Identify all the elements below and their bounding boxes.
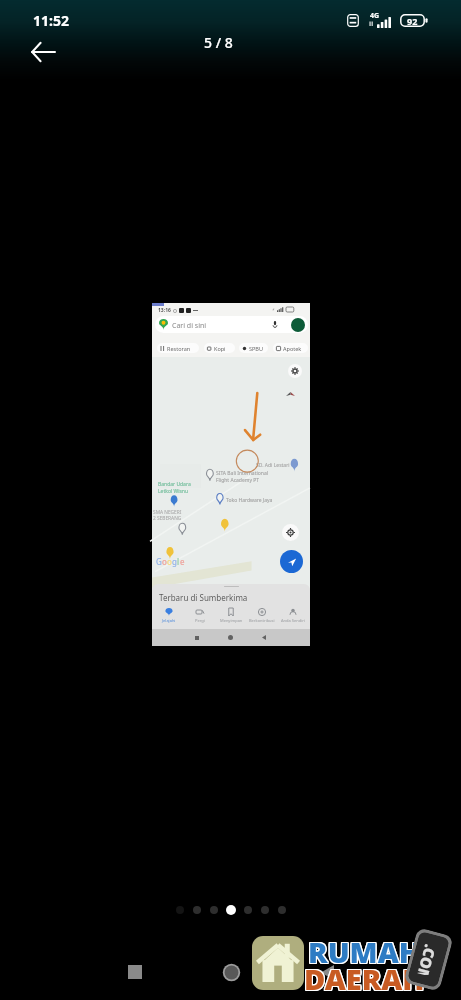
button[interactable]: Directions	[280, 550, 303, 573]
staticText: .COM	[416, 943, 441, 977]
staticText: Anda Sendiri	[281, 618, 305, 623]
staticText: g	[172, 556, 177, 567]
button[interactable]: Berkontribusi	[248, 608, 276, 623]
button[interactable]: Kopi	[204, 343, 235, 353]
button[interactable]: Map layers	[288, 364, 302, 378]
staticText: DAERAH	[304, 960, 425, 999]
staticText: RUMAH	[309, 933, 422, 972]
staticText: DAERAH	[305, 959, 426, 998]
staticText: RUMAH	[307, 933, 420, 972]
button[interactable]: Anda Sendiri	[279, 608, 307, 623]
staticText: Menyimpan	[220, 618, 243, 623]
staticText: RUMAH	[307, 932, 420, 971]
button[interactable]: Home	[211, 952, 252, 993]
staticText: DAERAH	[305, 958, 426, 997]
staticText: DAERAH	[305, 960, 426, 999]
staticText: Apotek	[283, 345, 302, 352]
button[interactable]: Back	[307, 952, 348, 993]
staticText: DAERAH	[303, 960, 424, 999]
staticText: e	[180, 556, 185, 567]
button[interactable]: Pergi	[186, 608, 214, 623]
button[interactable]: Cari di sini	[155, 316, 308, 333]
staticText: Cari di sini	[172, 321, 207, 331]
staticText: RUMAH	[307, 931, 420, 970]
staticText: RUMAH	[308, 931, 421, 970]
staticText: Jelajahi	[162, 618, 176, 623]
staticText: 11:52	[33, 11, 69, 30]
staticText: DAERAH	[304, 959, 425, 998]
staticText: DAERAH	[304, 958, 425, 997]
staticText: 92	[407, 15, 418, 27]
staticText: 13:16	[158, 307, 171, 314]
staticText: o	[167, 556, 172, 567]
staticText: 5 / 8	[204, 33, 233, 52]
button[interactable]: Account	[291, 318, 305, 332]
staticText: SMA NEGERI 2 SEBERANG	[153, 509, 182, 521]
staticText: Restoran	[167, 345, 191, 352]
staticText: RUMAH	[308, 933, 421, 972]
staticText: RUMAH	[308, 932, 421, 971]
staticText: Bandar Udara Letkol Wisnu	[158, 481, 191, 495]
staticText: o	[162, 556, 167, 567]
staticText: SD. Adi Lestari	[256, 462, 290, 469]
button[interactable]: My location	[282, 524, 299, 541]
staticText: 4G	[370, 11, 380, 21]
staticText: Berkontribusi	[249, 618, 275, 623]
button[interactable]: Restoran	[157, 343, 199, 353]
button[interactable]: Apotek	[273, 343, 308, 353]
staticText: G	[156, 556, 162, 567]
staticText: SPBU	[249, 345, 263, 352]
staticText: Terbaru di Sumberkima	[159, 592, 248, 603]
button[interactable]: Back	[20, 29, 65, 74]
staticText: ⚡	[272, 307, 275, 312]
button[interactable]: Menyimpan	[217, 608, 245, 623]
staticText: DAERAH	[303, 959, 424, 998]
staticText: l	[177, 556, 180, 567]
staticText: RUMAH	[309, 932, 422, 971]
button[interactable]: SPBU	[239, 343, 268, 353]
staticText: Kopi	[214, 345, 226, 352]
staticText: SITA Bali International Flight Academy P…	[216, 470, 268, 484]
staticText: Pergi	[195, 618, 205, 623]
staticText: DAERAH	[303, 958, 424, 997]
button[interactable]: Recent apps	[114, 951, 155, 992]
staticText: RUMAH	[309, 931, 422, 970]
staticText: Toko Hardware Jaya	[226, 497, 273, 504]
button[interactable]: Jelajahi	[155, 608, 183, 623]
